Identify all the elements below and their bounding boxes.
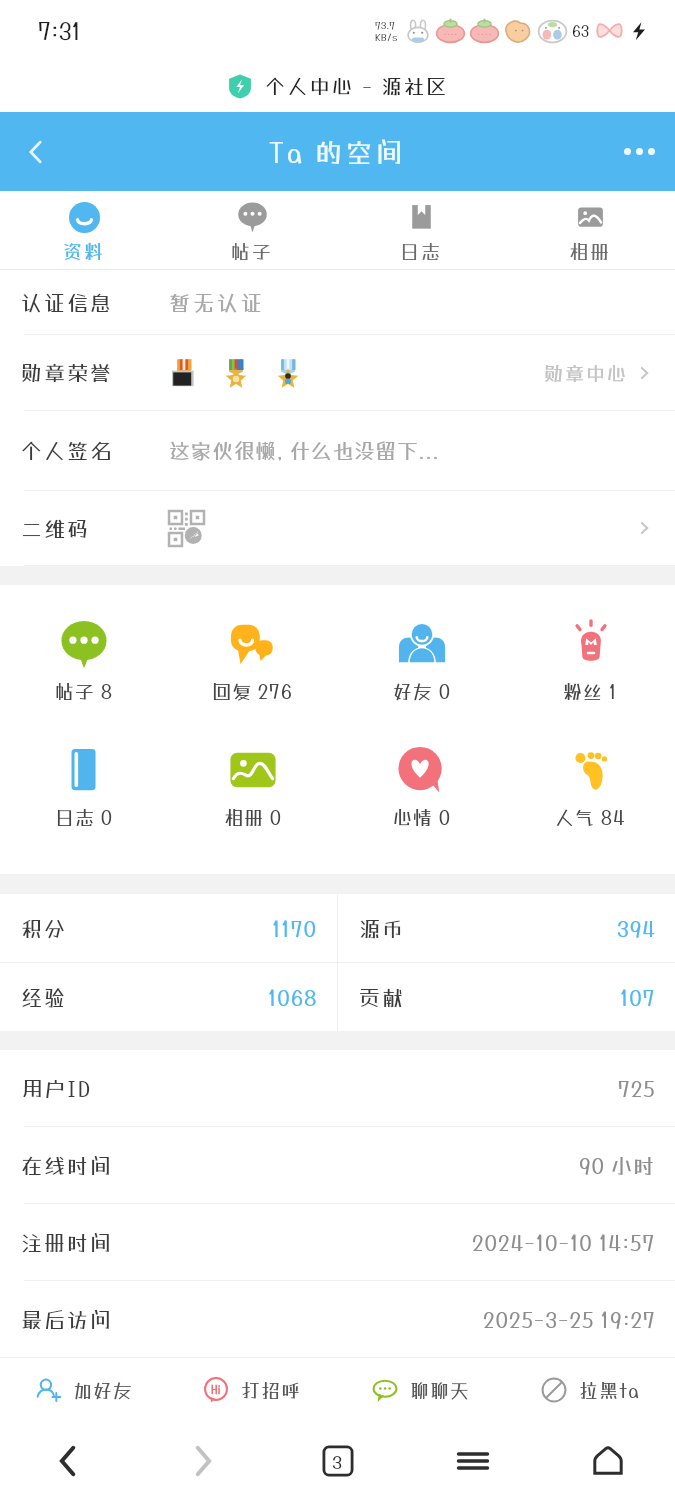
staticText: 个人中心 - 源社区 bbox=[265, 74, 449, 98]
staticText: 积分 bbox=[21, 916, 67, 941]
staticText: 用户ID bbox=[21, 1076, 93, 1101]
staticText: 2024-10-10 14:57 bbox=[472, 1230, 656, 1255]
button[interactable]: 经验 bbox=[0, 963, 337, 1031]
button[interactable]: Back bbox=[0, 1422, 135, 1500]
button[interactable]: Tabs bbox=[270, 1422, 405, 1500]
button[interactable]: Hi bbox=[168, 1358, 337, 1422]
staticText: 二维码 bbox=[21, 516, 169, 541]
button[interactable]: 心情 0 bbox=[337, 746, 506, 828]
staticText: Hi bbox=[211, 1383, 221, 1396]
staticText: 73.7 bbox=[375, 19, 395, 31]
button[interactable]: 相册 bbox=[506, 191, 675, 269]
button[interactable]: 积分 bbox=[0, 894, 337, 962]
staticText: 聊聊天 bbox=[410, 1379, 471, 1401]
staticText: 1068 bbox=[268, 985, 318, 1010]
staticText: 勋章荣誉 bbox=[21, 360, 169, 385]
button[interactable]: 好友 0 bbox=[337, 620, 506, 702]
staticText: 在线时间 bbox=[21, 1153, 113, 1178]
staticText: 107 bbox=[620, 985, 656, 1010]
button[interactable]: 二维码 bbox=[0, 491, 675, 565]
staticText: 394 bbox=[617, 916, 656, 941]
staticText: 人气 84 bbox=[555, 806, 626, 828]
button[interactable]: More options bbox=[603, 112, 675, 191]
staticText: 资料 bbox=[63, 240, 106, 262]
button[interactable]: 注册时间 bbox=[0, 1204, 675, 1280]
button[interactable]: 粉丝 1 bbox=[506, 620, 675, 702]
staticText: 勋章中心 bbox=[544, 362, 629, 384]
button[interactable]: Forward bbox=[135, 1422, 270, 1500]
staticText: 认证信息 bbox=[21, 290, 169, 315]
button[interactable]: Back bbox=[0, 112, 72, 191]
staticText: KB/s bbox=[375, 31, 398, 43]
button[interactable]: 日志 bbox=[337, 191, 506, 269]
staticText: 拉黑ta bbox=[579, 1379, 641, 1401]
staticText: 63 bbox=[572, 22, 590, 40]
staticText: 日志 bbox=[400, 240, 443, 262]
staticText: 3 bbox=[332, 1451, 343, 1472]
button[interactable]: 勋章荣誉 bbox=[0, 335, 675, 410]
staticText: 贡献 bbox=[359, 985, 405, 1010]
staticText: 加好友 bbox=[73, 1379, 134, 1401]
staticText: 粉丝 1 bbox=[563, 680, 618, 702]
button[interactable]: Menu bbox=[405, 1422, 540, 1500]
button[interactable]: 用户ID bbox=[0, 1050, 675, 1126]
button[interactable]: 日志 0 bbox=[0, 746, 168, 828]
button[interactable]: 回复 276 bbox=[168, 620, 337, 702]
button[interactable]: 个人签名 bbox=[0, 411, 675, 490]
button[interactable]: 在线时间 bbox=[0, 1127, 675, 1203]
staticText: 个人签名 bbox=[21, 438, 169, 463]
staticText: 2025-3-25 19:27 bbox=[483, 1307, 656, 1332]
button[interactable]: 拉黑ta bbox=[506, 1358, 675, 1422]
staticText: 帖子 bbox=[231, 240, 274, 262]
button[interactable]: 资料 bbox=[0, 191, 168, 269]
staticText: 相册 0 bbox=[224, 806, 282, 828]
staticText: 这家伙很懒, 什么也没留下... bbox=[169, 438, 440, 463]
staticText: 7:31 bbox=[38, 17, 81, 44]
staticText: 帖子 8 bbox=[55, 680, 114, 702]
staticText: 好友 0 bbox=[393, 680, 451, 702]
staticText: Ta 的空间 bbox=[269, 136, 406, 168]
button[interactable]: 认证信息 bbox=[0, 270, 675, 334]
staticText: 注册时间 bbox=[21, 1230, 113, 1255]
staticText: 暂无认证 bbox=[169, 290, 265, 315]
button[interactable]: 帖子 bbox=[168, 191, 337, 269]
button[interactable]: 聊聊天 bbox=[337, 1358, 506, 1422]
button[interactable]: 相册 0 bbox=[168, 746, 337, 828]
staticText: 相册 bbox=[569, 240, 612, 262]
button[interactable]: 最后访问 bbox=[0, 1281, 675, 1357]
staticText: 1170 bbox=[272, 916, 318, 941]
staticText: 最后访问 bbox=[21, 1307, 113, 1332]
button[interactable]: Home bbox=[540, 1422, 675, 1500]
button[interactable]: 人气 84 bbox=[506, 746, 675, 828]
staticText: 心情 0 bbox=[393, 806, 451, 828]
staticText: 回复 276 bbox=[212, 680, 293, 702]
button[interactable]: 帖子 8 bbox=[0, 620, 168, 702]
button[interactable]: 源币 bbox=[338, 894, 675, 962]
staticText: 日志 0 bbox=[55, 806, 113, 828]
staticText: 打招呼 bbox=[241, 1379, 302, 1401]
staticText: 725 bbox=[618, 1076, 656, 1101]
staticText: 源币 bbox=[359, 916, 405, 941]
button[interactable]: 贡献 bbox=[338, 963, 675, 1031]
staticText: 经验 bbox=[21, 985, 67, 1010]
staticText: 90 小时 bbox=[579, 1153, 656, 1178]
button[interactable]: 加好友 bbox=[0, 1358, 168, 1422]
